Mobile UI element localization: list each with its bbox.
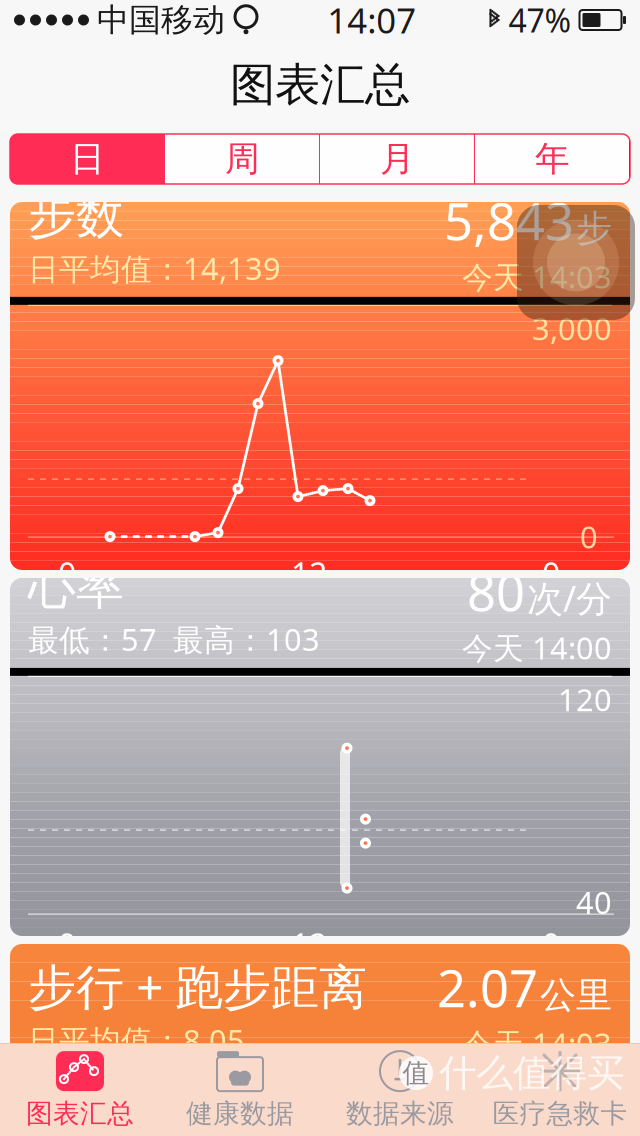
staticText: 年 xyxy=(535,138,570,180)
button[interactable]: 步行 + 跑步距离 xyxy=(10,944,630,1094)
staticText: 日平均值：14,139 xyxy=(28,248,281,288)
staticText: 0 xyxy=(542,553,560,595)
button[interactable]: 日 xyxy=(10,134,165,184)
staticText: 公里 xyxy=(540,973,612,1017)
staticText: 周 xyxy=(225,138,260,180)
staticText: 47% xyxy=(508,0,571,41)
button[interactable]: 年 xyxy=(475,134,630,184)
button[interactable]: 医疗急救卡 xyxy=(480,1043,640,1135)
staticText: 5,843 xyxy=(444,187,574,254)
button[interactable]: 数据来源 xyxy=(320,1043,480,1135)
staticText: 80 xyxy=(467,558,525,625)
staticText: 日平均值：8.05 xyxy=(28,1020,245,1060)
staticText: 今天 14:03 xyxy=(462,256,612,297)
staticText: 日 xyxy=(70,138,105,180)
staticText: 0 xyxy=(580,516,598,557)
staticText: 月 xyxy=(380,138,415,180)
staticText: 2.07 xyxy=(437,954,538,1021)
button[interactable]: 健康数据 xyxy=(160,1043,320,1135)
staticText: 最低：57 最高：103 xyxy=(28,619,320,659)
staticText: 120 xyxy=(558,679,612,720)
button[interactable]: 周 xyxy=(165,134,320,184)
staticText: 40 xyxy=(576,882,612,922)
button[interactable]: 图表汇总 xyxy=(0,1043,160,1135)
staticText: 中国移动 xyxy=(97,0,225,40)
staticText: 健康数据 xyxy=(186,1097,294,1130)
staticText: 12 xyxy=(291,553,327,595)
staticText: 数据来源 xyxy=(346,1097,454,1130)
staticText: 医疗急救卡 xyxy=(492,1097,627,1130)
staticText: 步 xyxy=(576,206,612,250)
staticText: 次/分 xyxy=(527,574,612,622)
staticText: 图表汇总 xyxy=(26,1097,134,1130)
button[interactable]: 步数 xyxy=(10,202,630,570)
staticText: 今天 14:00 xyxy=(462,627,612,668)
staticText: 值 xyxy=(402,1057,429,1089)
staticText: 12 xyxy=(291,924,327,966)
button[interactable]: 心率 xyxy=(10,578,630,936)
button[interactable]: 月 xyxy=(320,134,475,184)
staticText: 0 xyxy=(58,553,76,595)
staticText: 0 xyxy=(542,924,560,966)
staticText: 步数 xyxy=(28,187,124,246)
staticText: 心率 xyxy=(28,558,124,617)
staticText: 14:07 xyxy=(327,0,416,43)
staticText: 步行 + 跑步距离 xyxy=(28,954,367,1018)
staticText: 图表汇总 xyxy=(230,57,410,113)
staticText: 今天 14:03 xyxy=(462,1023,612,1064)
staticText: 0 xyxy=(58,924,76,966)
staticText: 什么值得买 xyxy=(439,1050,624,1096)
staticText: 3,000 xyxy=(532,308,612,349)
